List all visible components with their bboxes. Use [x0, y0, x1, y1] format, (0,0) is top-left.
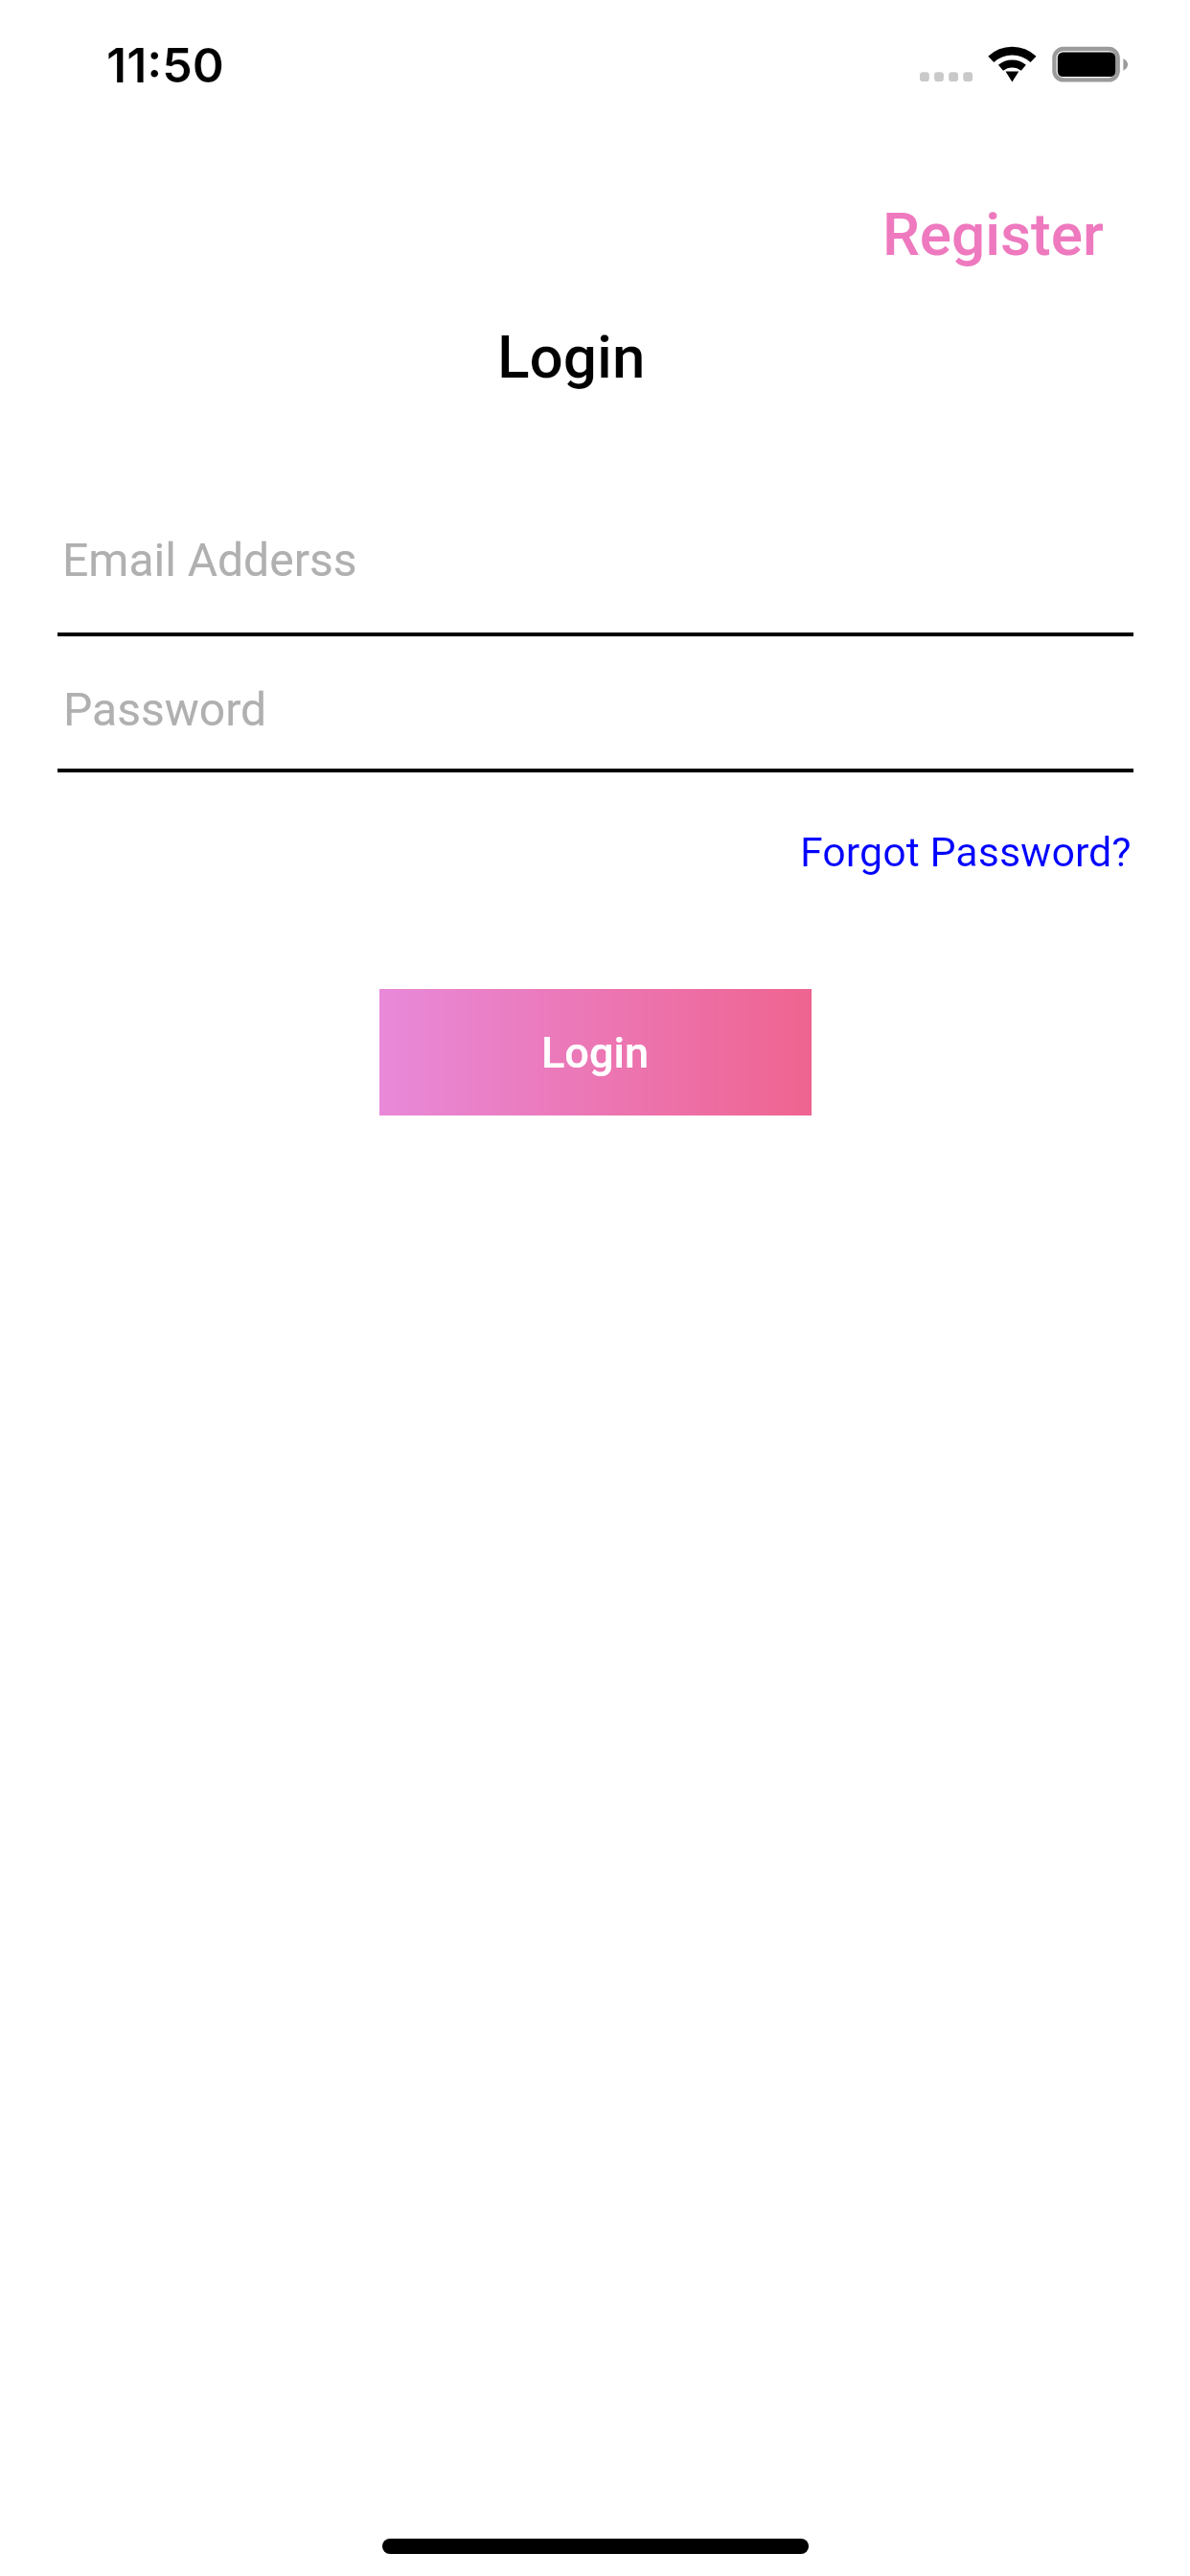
button[interactable]: Login	[379, 989, 812, 1115]
staticText: Register	[882, 199, 1104, 269]
button[interactable]: Email Adderss	[0, 508, 1190, 636]
staticText: Email Adderss	[62, 533, 357, 586]
staticText: Forgot Password?	[800, 828, 1132, 876]
button[interactable]: Register	[833, 157, 1132, 299]
staticText: Login	[541, 1027, 650, 1078]
button[interactable]: Password	[0, 657, 1190, 772]
staticText: Login	[497, 322, 646, 392]
button[interactable]: Forgot Password?	[772, 792, 1159, 914]
staticText: Password	[63, 682, 267, 736]
other: Cellular signal, Wi-Fi and battery statu…	[901, 29, 1140, 96]
staticText: 11:50	[106, 36, 224, 94]
